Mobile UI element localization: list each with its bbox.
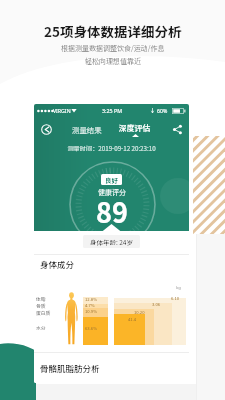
staticText: 25项身体数据详细分析 [44, 21, 182, 41]
button[interactable]: Back [38, 121, 54, 137]
staticText: 骨骼肌脂肪分析 [40, 362, 100, 374]
button[interactable]: Share [169, 121, 185, 137]
staticText: kg [176, 285, 181, 291]
staticText: 身体年龄: 24岁 [90, 237, 133, 246]
staticText: VIRGIN [53, 107, 71, 114]
staticText: 体脂 [36, 295, 46, 302]
staticText: 12.8% [85, 296, 97, 302]
staticText: 89 [96, 192, 128, 231]
staticText: 良好 [105, 175, 118, 184]
staticText: 健康评分 [98, 187, 126, 197]
staticText: 骨质 [36, 302, 46, 309]
staticText: 根据测量数据调整饮食/运动/作息 [61, 43, 165, 53]
staticText: 63.6% [85, 325, 97, 331]
staticText: 轻松向理想值靠近 [85, 56, 141, 66]
staticText: 41.4 [128, 316, 137, 322]
staticText: 蛋白质 [36, 309, 51, 316]
staticText: 10.20 [134, 309, 145, 315]
staticText: 3.06 [152, 301, 161, 307]
button[interactable]: 深度评估 [115, 122, 155, 137]
staticText: 测量结果 [72, 124, 102, 135]
staticText: 深度评估 [119, 122, 151, 133]
button[interactable]: 测量结果 [68, 121, 106, 138]
staticText: 4.7% [85, 302, 95, 308]
staticText: 10.9% [85, 308, 97, 314]
staticText: 身体成分 [40, 258, 75, 270]
staticText: 60% [157, 107, 168, 114]
staticText: 水分 [36, 324, 46, 331]
button[interactable]: 骨骼肌脂肪分析 [34, 353, 189, 383]
staticText: 6.10 [171, 295, 180, 301]
staticText: 3:25 PM [102, 107, 123, 114]
staticText: 测量时间：2019-09-12 20:23:10 [34, 144, 189, 153]
